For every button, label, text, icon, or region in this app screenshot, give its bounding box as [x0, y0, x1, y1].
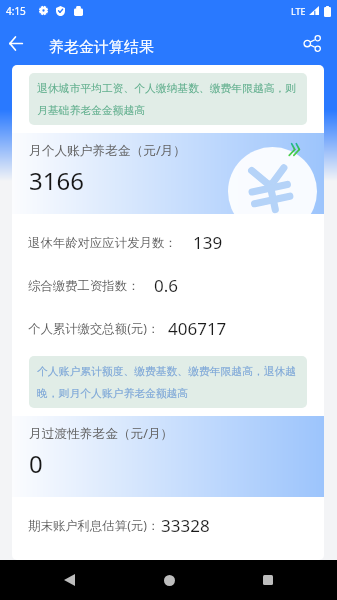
staticText: 月过渡性养老金（元/月）	[29, 424, 174, 441]
staticText: 期末账户利息估算(元)：	[28, 517, 160, 534]
staticText: 个人账户累计额度、缴费基数、缴费年限越高，退休越晚，则月个人账户养老金额越高	[37, 365, 299, 400]
button[interactable]: 分享	[301, 22, 337, 65]
staticText: 139	[193, 231, 223, 254]
staticText: 个人累计缴交总额(元)：	[28, 320, 160, 337]
staticText: 4:15	[6, 4, 26, 18]
button[interactable]: 期末账户利息估算(元)：	[12, 504, 324, 547]
button[interactable]: 个人累计缴交总额(元)：	[12, 307, 324, 350]
staticText: 综合缴费工资指数：	[28, 278, 140, 294]
staticText: 3166	[29, 164, 84, 197]
staticText: 退休城市平均工资、个人缴纳基数、缴费年限越高，则月基础养老金金额越高	[37, 82, 299, 117]
staticText: 养老金计算结果	[49, 38, 154, 57]
staticText: 退休年龄对应应计发月数：	[28, 235, 177, 251]
staticText: LTE	[291, 5, 306, 17]
staticText: 0	[29, 447, 43, 480]
button[interactable]: 最近任务	[238, 560, 298, 600]
button[interactable]: 返回	[0, 22, 32, 65]
staticText: 33328	[161, 514, 210, 537]
staticText: 406717	[168, 317, 227, 340]
button[interactable]: 返回	[39, 560, 99, 600]
button[interactable]: 主页	[139, 560, 199, 600]
staticText: 0.6	[154, 274, 179, 297]
staticText: 月个人账户养老金（元/月）	[29, 141, 186, 158]
button[interactable]: 退休年龄对应应计发月数：	[12, 221, 324, 264]
button[interactable]: 综合缴费工资指数：	[12, 264, 324, 307]
